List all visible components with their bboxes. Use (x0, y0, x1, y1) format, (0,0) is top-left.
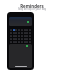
button[interactable] (9, 17, 32, 26)
staticText: Stay on top of your day (0, 7, 64, 11)
staticText: Reminders (0, 3, 64, 9)
button[interactable] (13, 29, 15, 31)
button[interactable] (9, 44, 32, 68)
